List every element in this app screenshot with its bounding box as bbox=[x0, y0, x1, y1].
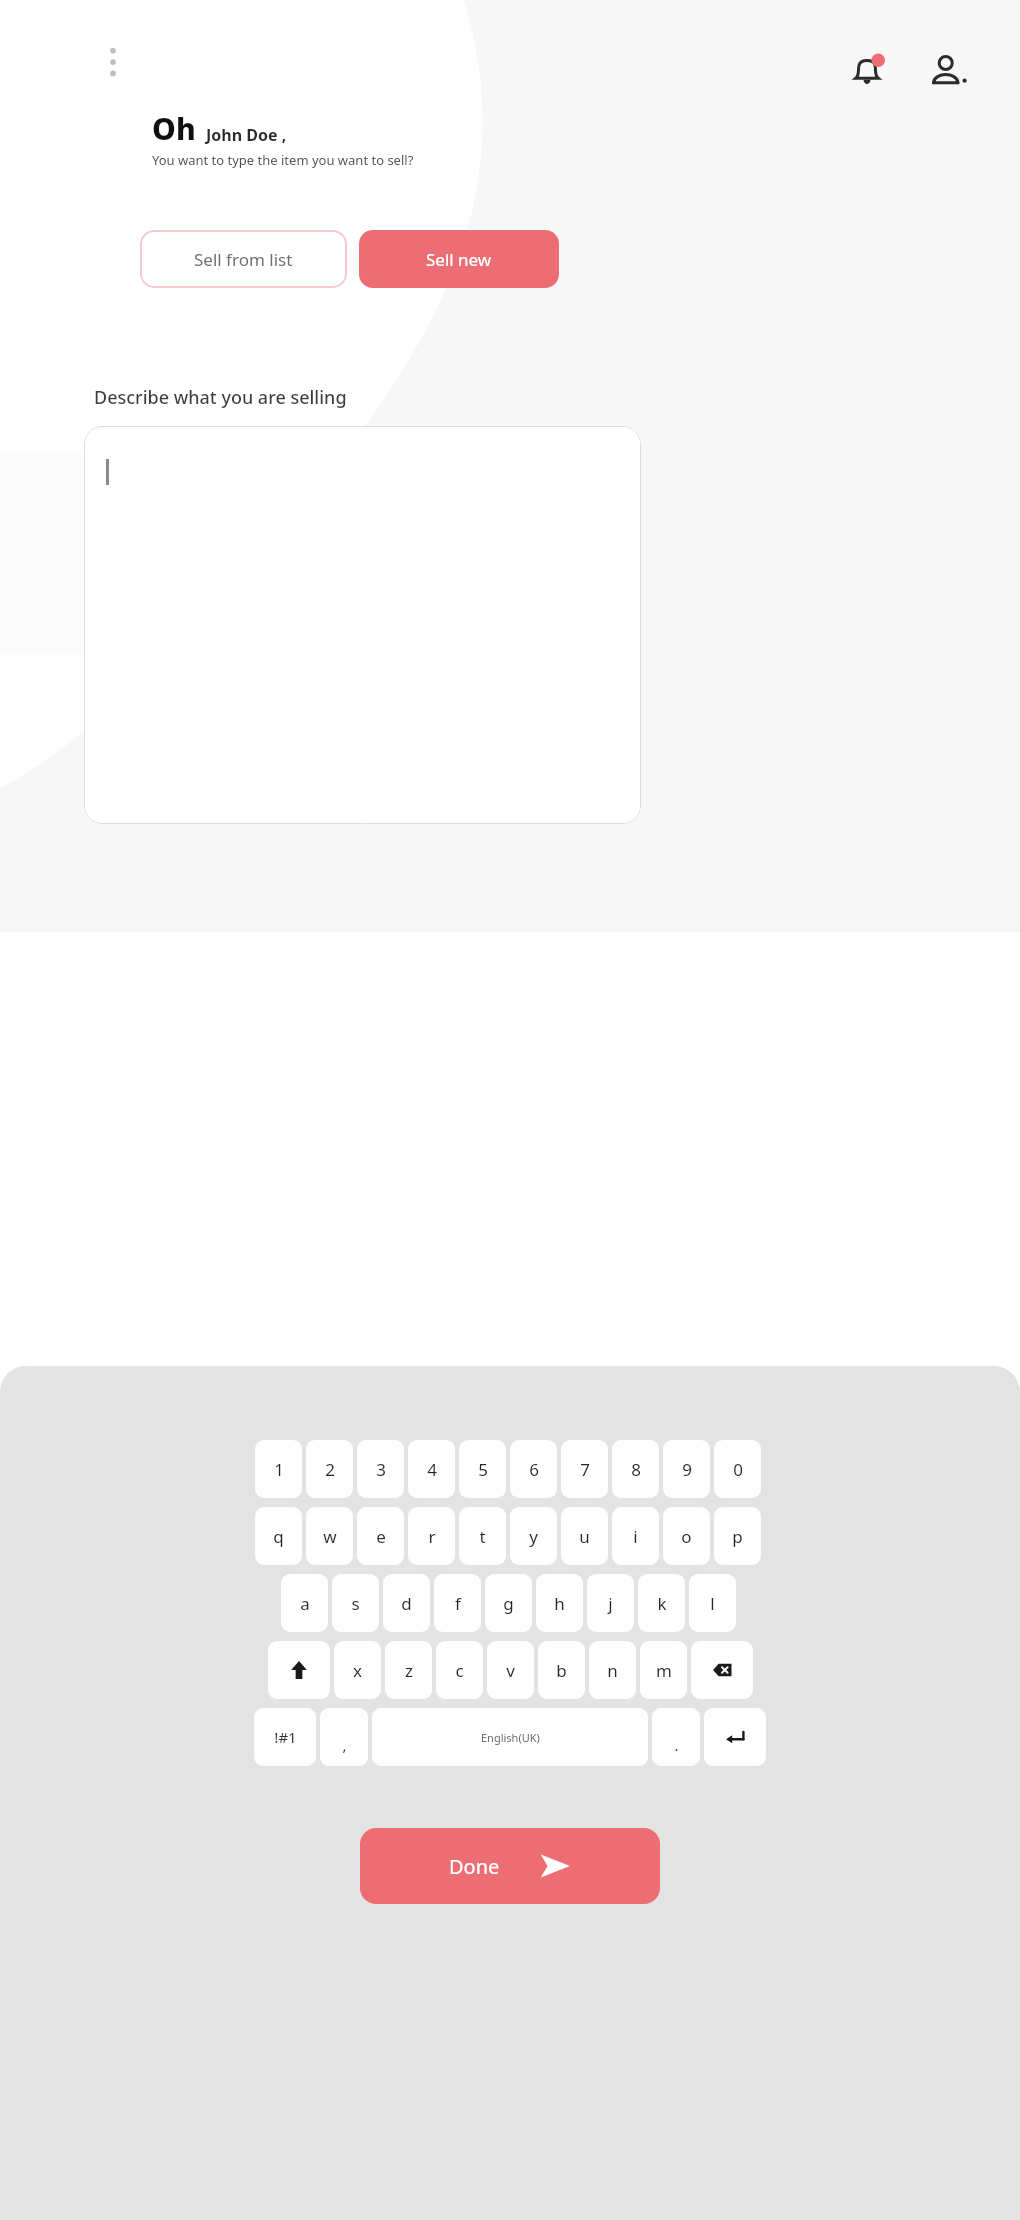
button[interactable]: 5 bbox=[459, 1440, 506, 1498]
staticText: a bbox=[300, 1592, 310, 1615]
button[interactable]: 3 bbox=[357, 1440, 404, 1498]
button[interactable]: d bbox=[383, 1574, 430, 1632]
button[interactable] bbox=[84, 426, 641, 824]
button[interactable]: . bbox=[652, 1708, 700, 1766]
button[interactable]: g bbox=[485, 1574, 532, 1632]
staticText: h bbox=[554, 1592, 565, 1615]
button[interactable]: More options bbox=[96, 40, 130, 84]
button[interactable]: k bbox=[638, 1574, 685, 1632]
button[interactable]: 9 bbox=[663, 1440, 710, 1498]
staticText: You want to type the item you want to se… bbox=[152, 151, 414, 169]
button[interactable]: 8 bbox=[612, 1440, 659, 1498]
button[interactable]: Account bbox=[918, 42, 976, 100]
button[interactable]: Done bbox=[360, 1828, 660, 1904]
staticText: . bbox=[674, 1735, 679, 1755]
button[interactable]: , bbox=[320, 1708, 368, 1766]
staticText: Sell from list bbox=[194, 248, 293, 271]
button[interactable]: f bbox=[434, 1574, 481, 1632]
staticText: y bbox=[529, 1525, 538, 1548]
staticText: English(UK) bbox=[481, 1730, 540, 1745]
button[interactable]: l bbox=[689, 1574, 736, 1632]
staticText: Oh bbox=[152, 108, 196, 149]
button[interactable]: s bbox=[332, 1574, 379, 1632]
button[interactable]: 7 bbox=[561, 1440, 608, 1498]
button[interactable]: a bbox=[281, 1574, 328, 1632]
staticText: f bbox=[455, 1592, 461, 1615]
staticText: e bbox=[376, 1525, 386, 1548]
staticText: s bbox=[351, 1592, 360, 1615]
button[interactable]: r bbox=[408, 1507, 455, 1565]
staticText: m bbox=[656, 1659, 672, 1682]
staticText: q bbox=[273, 1525, 284, 1548]
button[interactable]: j bbox=[587, 1574, 634, 1632]
staticText: Sell new bbox=[426, 248, 492, 271]
staticText: l bbox=[710, 1592, 715, 1615]
staticText: x bbox=[353, 1659, 362, 1682]
button[interactable]: 4 bbox=[408, 1440, 455, 1498]
staticText: 5 bbox=[478, 1458, 488, 1481]
staticText: g bbox=[503, 1592, 514, 1615]
button[interactable]: b bbox=[538, 1641, 585, 1699]
staticText: v bbox=[506, 1659, 515, 1682]
staticText: 7 bbox=[580, 1458, 590, 1481]
staticText: Describe what you are selling bbox=[94, 385, 347, 410]
staticText: i bbox=[633, 1525, 638, 1548]
staticText: w bbox=[323, 1525, 337, 1548]
staticText: !#1 bbox=[274, 1727, 297, 1747]
button[interactable]: c bbox=[436, 1641, 483, 1699]
staticText: k bbox=[657, 1592, 667, 1615]
button[interactable]: Sell from list bbox=[140, 230, 347, 288]
button[interactable]: 0 bbox=[714, 1440, 761, 1498]
staticText: 3 bbox=[376, 1458, 386, 1481]
staticText: o bbox=[681, 1525, 692, 1548]
button[interactable]: w bbox=[306, 1507, 353, 1565]
staticText: , bbox=[342, 1735, 347, 1755]
button[interactable]: h bbox=[536, 1574, 583, 1632]
button[interactable]: English(UK) bbox=[372, 1708, 648, 1766]
staticText: 4 bbox=[427, 1458, 437, 1481]
button[interactable]: p bbox=[714, 1507, 761, 1565]
button[interactable]: Shift bbox=[268, 1641, 330, 1699]
staticText: u bbox=[579, 1525, 590, 1548]
button[interactable]: Enter bbox=[704, 1708, 766, 1766]
button[interactable]: Sell new bbox=[359, 230, 559, 288]
staticText: 0 bbox=[733, 1458, 743, 1481]
button[interactable]: !#1 bbox=[254, 1708, 316, 1766]
button[interactable]: v bbox=[487, 1641, 534, 1699]
staticText: 2 bbox=[325, 1458, 335, 1481]
button[interactable]: o bbox=[663, 1507, 710, 1565]
staticText: n bbox=[607, 1659, 618, 1682]
staticText: 6 bbox=[529, 1458, 539, 1481]
button[interactable]: e bbox=[357, 1507, 404, 1565]
button[interactable]: i bbox=[612, 1507, 659, 1565]
staticText: Done bbox=[449, 1853, 500, 1880]
button[interactable]: u bbox=[561, 1507, 608, 1565]
button[interactable]: q bbox=[255, 1507, 302, 1565]
button[interactable]: x bbox=[334, 1641, 381, 1699]
staticText: John Doe , bbox=[206, 124, 287, 146]
staticText: r bbox=[428, 1525, 436, 1548]
button[interactable]: m bbox=[640, 1641, 687, 1699]
button[interactable]: n bbox=[589, 1641, 636, 1699]
button[interactable]: t bbox=[459, 1507, 506, 1565]
staticText: 1 bbox=[274, 1458, 284, 1481]
staticText: d bbox=[401, 1592, 412, 1615]
button[interactable]: 1 bbox=[255, 1440, 302, 1498]
staticText: j bbox=[608, 1592, 613, 1615]
staticText: p bbox=[732, 1525, 743, 1548]
button[interactable]: Notifications bbox=[838, 42, 896, 100]
staticText: 9 bbox=[682, 1458, 692, 1481]
button[interactable]: 6 bbox=[510, 1440, 557, 1498]
staticText: 8 bbox=[631, 1458, 641, 1481]
button[interactable]: 2 bbox=[306, 1440, 353, 1498]
button[interactable]: y bbox=[510, 1507, 557, 1565]
staticText: c bbox=[455, 1659, 464, 1682]
button[interactable]: Backspace bbox=[691, 1641, 753, 1699]
staticText: z bbox=[405, 1659, 413, 1682]
staticText: t bbox=[479, 1525, 486, 1548]
button[interactable]: z bbox=[385, 1641, 432, 1699]
staticText: b bbox=[556, 1659, 567, 1682]
